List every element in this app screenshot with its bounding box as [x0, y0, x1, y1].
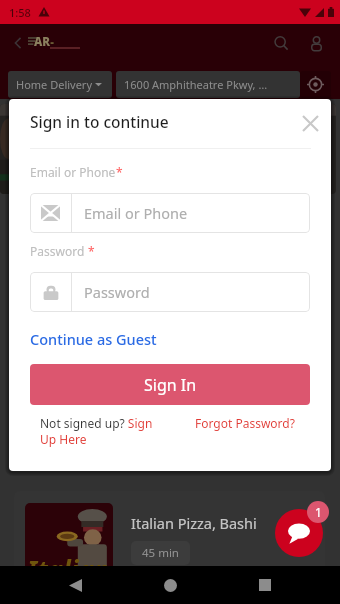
button[interactable]: Home Delivery	[8, 71, 112, 98]
staticText: *	[88, 243, 95, 259]
button[interactable]: Sign In	[30, 364, 310, 405]
button[interactable]: Not signed up? Sign Up Here	[40, 415, 153, 447]
staticText: Continue as Guest	[30, 329, 157, 349]
staticText: Forgot Password?	[195, 415, 295, 431]
button[interactable]: Continue as Guest	[30, 329, 157, 349]
button[interactable]: Email or Phone	[30, 193, 310, 233]
button[interactable]: Recent apps	[245, 566, 285, 604]
staticText: Password	[84, 282, 150, 302]
staticText: Sign In	[144, 374, 197, 396]
staticText: Password	[30, 243, 88, 259]
staticText: 1	[315, 504, 322, 520]
staticText: Italian Pizza, Bashi	[131, 513, 257, 533]
button[interactable]: Search	[268, 30, 294, 56]
button[interactable]: Use current location	[300, 71, 331, 98]
staticText: Email or Phone	[30, 164, 116, 180]
button[interactable]: 1600 Amphitheatre Pkwy, …	[116, 71, 300, 98]
staticText: Italian	[27, 552, 110, 578]
button[interactable]: Close	[296, 109, 324, 137]
button[interactable]: Italian	[14, 491, 325, 581]
staticText: 1600 Amphitheatre Pkwy, …	[124, 77, 268, 92]
staticText: Home Delivery	[16, 77, 93, 92]
staticText: Not signed up? Sign Up Here	[40, 415, 153, 447]
staticText: Sign in to continue	[30, 111, 169, 132]
staticText: 1:58	[9, 5, 31, 20]
button[interactable]: Password	[30, 272, 310, 312]
button[interactable]: Chat	[275, 509, 323, 557]
staticText: Email or Phone	[84, 203, 188, 223]
button[interactable]: Account	[303, 30, 329, 56]
button[interactable]: Back	[55, 566, 95, 604]
staticText: AR-RASHA	[34, 34, 90, 52]
button[interactable]: Home	[150, 566, 190, 604]
button[interactable]: Back	[5, 30, 31, 56]
button[interactable]: Forgot Password?	[195, 415, 295, 431]
staticText: *	[116, 164, 123, 180]
staticText: 45 min	[142, 545, 179, 561]
